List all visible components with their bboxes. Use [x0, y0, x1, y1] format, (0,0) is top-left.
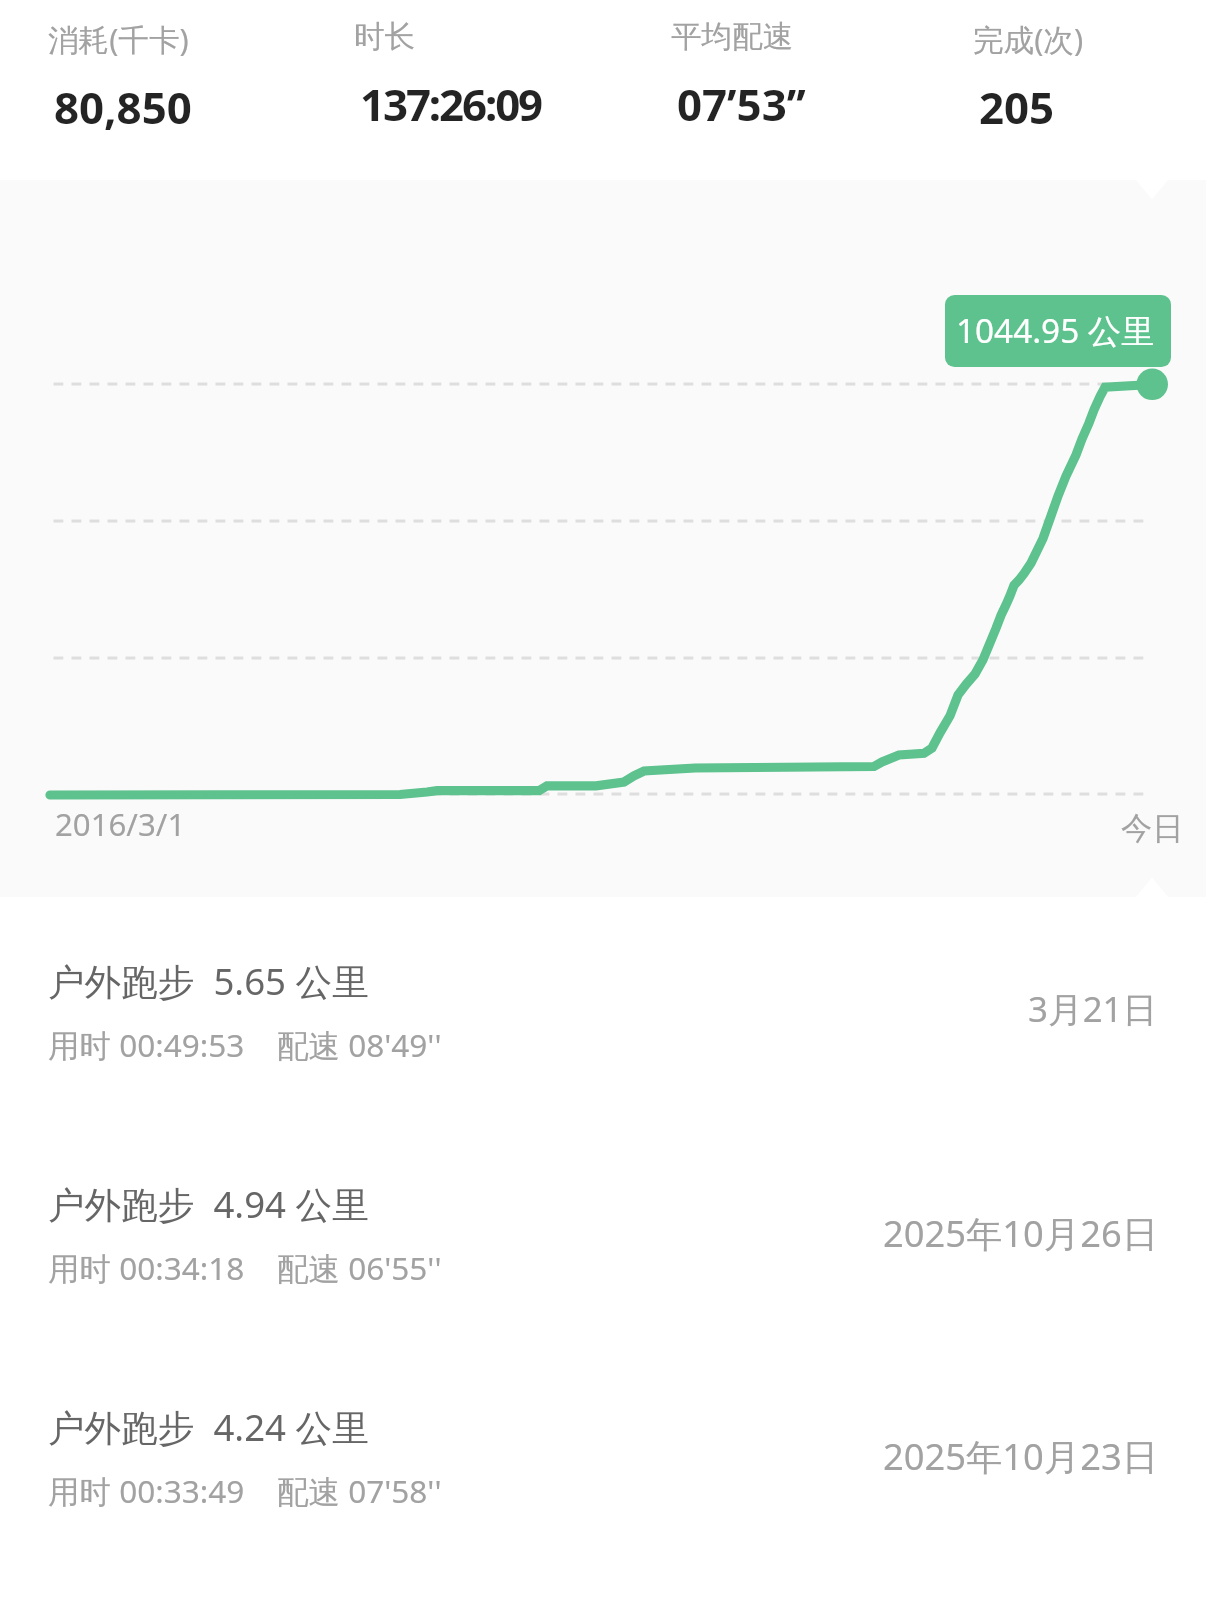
staticText: 80,850 [54, 77, 192, 137]
staticText: 2025年10月26日 [883, 1208, 1158, 1258]
button[interactable]: 户外跑步 4.24 公里 [0, 1367, 1206, 1590]
staticText: 205 [979, 77, 1055, 137]
button[interactable]: 户外跑步 4.94 公里 [0, 1144, 1206, 1367]
staticText: 户外跑步 4.24 公里 [48, 1402, 369, 1452]
staticText: 今日 [1121, 809, 1184, 848]
staticText: 户外跑步 4.94 公里 [48, 1179, 369, 1229]
staticText: 用时 00:34:18 配速 06'55'' [48, 1246, 442, 1289]
staticText: 3月21日 [1028, 985, 1158, 1033]
staticText: 时长 [354, 18, 416, 57]
staticText: 07’53’’ [677, 74, 806, 134]
staticText: 用时 00:33:49 配速 07'58'' [48, 1469, 442, 1512]
staticText: 用时 00:49:53 配速 08'49'' [48, 1023, 442, 1066]
staticText: 2016/3/1 [55, 803, 186, 845]
button[interactable]: 户外跑步 5.65 公里 [0, 921, 1206, 1144]
staticText: 完成(次) [973, 18, 1084, 60]
staticText: 平均配速 [671, 18, 794, 57]
staticText: 137:26:09 [360, 74, 542, 134]
staticText: 消耗(千卡) [48, 18, 189, 60]
button[interactable]: 1044.95 公里 [945, 295, 1171, 367]
staticText: 2025年10月23日 [883, 1431, 1158, 1481]
staticText: 户外跑步 5.65 公里 [48, 956, 369, 1006]
staticText: 1044.95 公里 [956, 307, 1155, 352]
other: Total distance chart [0, 180, 1206, 897]
